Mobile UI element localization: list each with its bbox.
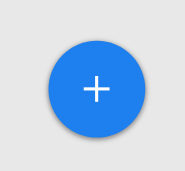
button[interactable]: Add: [49, 41, 145, 137]
